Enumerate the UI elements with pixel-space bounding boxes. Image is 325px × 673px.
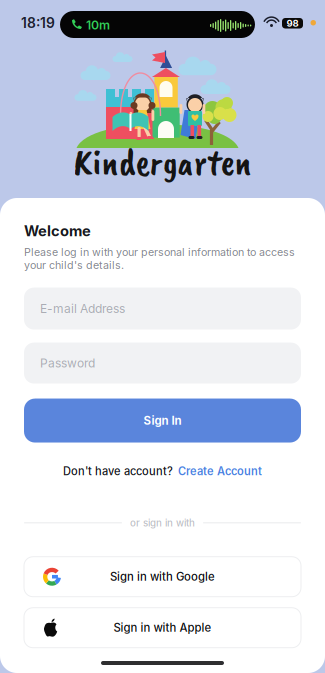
staticText: Sign in with Google [110, 570, 215, 584]
button[interactable]: Sign in with Apple [24, 608, 301, 648]
staticText: Kindergarten [73, 138, 251, 186]
staticText: Welcome [24, 222, 91, 240]
button[interactable]: Create Account [178, 465, 262, 478]
button[interactable]: Sign In [24, 399, 301, 443]
staticText: Don't have account? [63, 465, 173, 478]
staticText: 98 [286, 17, 298, 29]
staticText: Create Account [178, 465, 262, 478]
staticText: E-mail Address [40, 301, 125, 316]
staticText: Sign In [143, 414, 181, 427]
staticText: Please log in with your personal informa… [24, 246, 295, 271]
staticText: or sign in with [130, 517, 195, 529]
button[interactable]: Sign in with Google [24, 557, 301, 597]
staticText: Sign in with Apple [113, 621, 211, 635]
staticText: 10m [86, 18, 110, 32]
staticText: 18:19 [21, 15, 55, 31]
staticText: Password [40, 356, 95, 370]
